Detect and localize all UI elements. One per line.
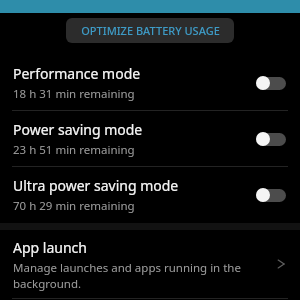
staticText: Performance mode <box>13 64 141 83</box>
button[interactable]: App launch <box>0 230 300 298</box>
button[interactable]: Power saving mode <box>0 111 300 166</box>
button[interactable]: Ultra power saving mode <box>0 167 300 222</box>
staticText: 18 h 31 min remaining <box>13 86 135 102</box>
button[interactable]: Performance mode <box>0 55 300 110</box>
button[interactable]: Toggle <box>256 188 286 202</box>
staticText: OPTIMIZE BATTERY USAGE <box>81 23 220 38</box>
button[interactable]: Toggle <box>256 76 286 90</box>
staticText: 70 h 29 min remaining <box>13 198 135 214</box>
staticText: Manage launches and apps running in the … <box>13 260 241 291</box>
staticText: Ultra power saving mode <box>13 176 179 195</box>
button[interactable]: OPTIMIZE BATTERY USAGE <box>66 18 234 43</box>
staticText: App launch <box>13 238 87 257</box>
staticText: Power saving mode <box>13 120 143 139</box>
staticText: 23 h 51 min remaining <box>13 142 135 158</box>
button[interactable]: Toggle <box>256 132 286 146</box>
